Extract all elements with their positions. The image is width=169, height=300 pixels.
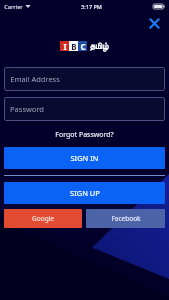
staticText: C [80,41,86,51]
staticText: 3:17 PM [81,3,102,10]
staticText: SIGN IN [70,153,99,163]
staticText: Facebook [111,214,141,223]
staticText: B [71,41,77,51]
staticText: Google [32,214,54,223]
button[interactable]: Facebook [86,209,165,228]
staticText: SIGN UP [70,188,100,198]
staticText: தமிழ் [89,42,109,51]
staticText: Carrier [4,3,23,10]
staticText: Password [10,104,44,114]
staticText: Email Address [10,74,60,84]
staticText: I [63,41,67,51]
staticText: Forgot Password? [55,130,114,140]
button[interactable]: Email Address [4,67,165,91]
button[interactable]: SIGN IN [4,147,165,169]
button[interactable]: SIGN UP [4,182,165,204]
button[interactable]: Close [145,14,163,32]
button[interactable]: Password [4,97,165,121]
button[interactable]: Forgot Password? [0,128,169,142]
button[interactable]: Google [4,209,82,228]
